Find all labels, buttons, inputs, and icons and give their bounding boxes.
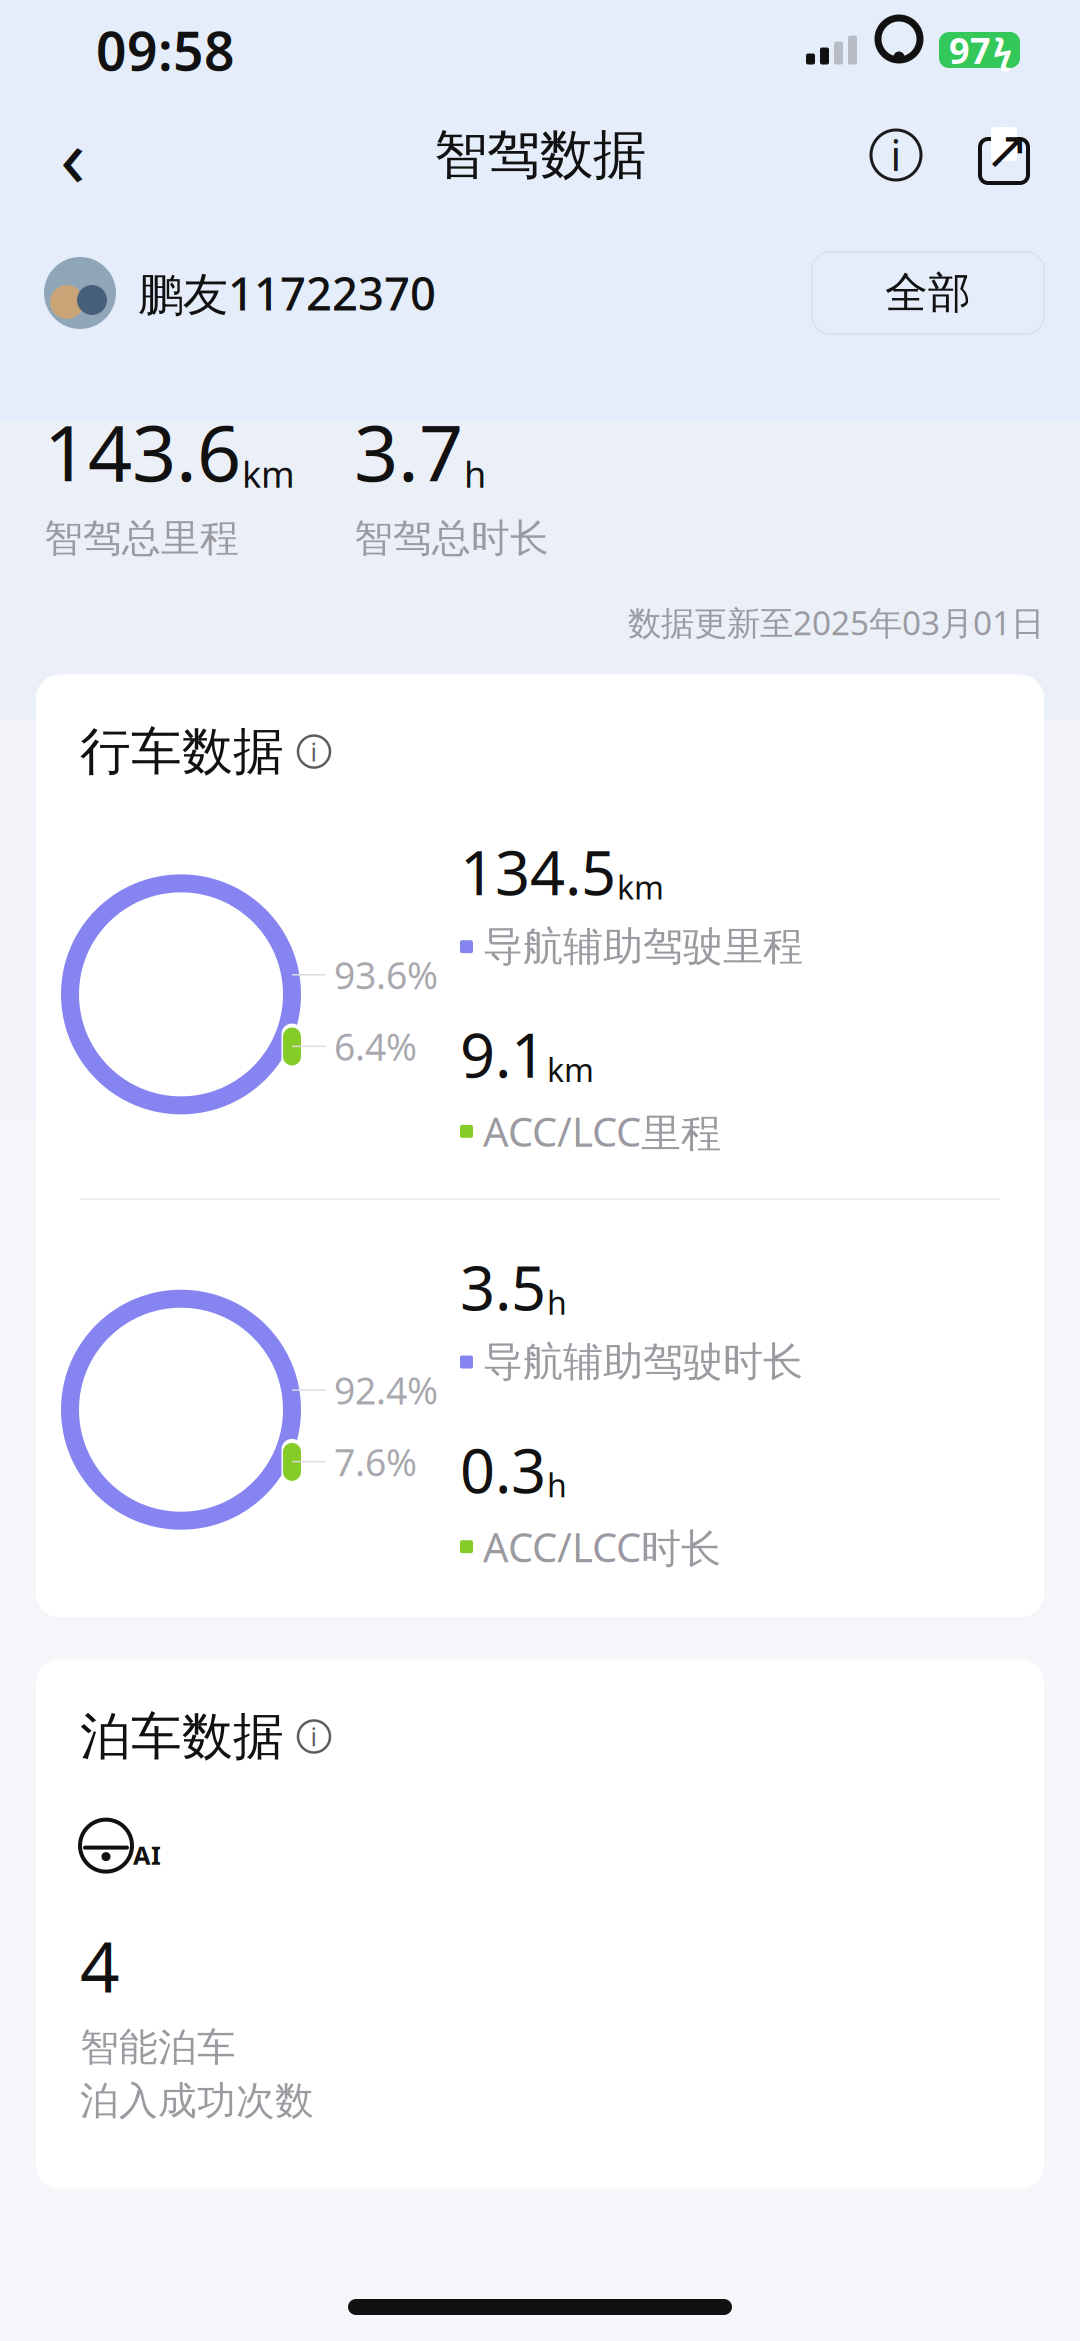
button[interactable]: 行车数据 <box>36 720 330 783</box>
staticText: ϟ <box>993 27 1012 73</box>
staticText: i <box>890 128 901 182</box>
staticText: 4 <box>80 1920 120 2012</box>
staticText: 导航辅助驾驶里程 <box>483 922 803 971</box>
staticText: 9.1 <box>460 1013 546 1095</box>
staticText: 数据更新至2025年03月01日 <box>628 600 1044 644</box>
button[interactable]: Back <box>28 110 118 200</box>
button[interactable]: 泊车数据 <box>36 1705 330 1768</box>
staticText: h <box>547 1464 567 1506</box>
button[interactable]: 全部 <box>812 252 1044 334</box>
staticText: i <box>310 1720 317 1753</box>
staticText: 智能泊车 <box>80 2024 236 2071</box>
staticText: i <box>310 735 317 768</box>
button[interactable]: Info <box>856 115 936 195</box>
staticText: km <box>617 866 664 908</box>
staticText: km <box>547 1048 594 1091</box>
staticText: 鹏友11722370 <box>138 263 436 323</box>
staticText: 行车数据 <box>80 720 284 783</box>
staticText: 134.5 <box>460 831 616 912</box>
staticText: 0.3 <box>460 1429 546 1510</box>
staticText: 97 <box>949 26 991 74</box>
staticText: 92.4% <box>334 1365 438 1415</box>
staticText: 3.5 <box>460 1246 546 1327</box>
staticText: 09:58 <box>96 15 235 85</box>
staticText: 泊入成功次数 <box>80 2077 314 2125</box>
button[interactable]: Share <box>964 115 1044 195</box>
staticText: 导航辅助驾驶时长 <box>483 1337 803 1387</box>
staticText: km <box>242 450 295 498</box>
staticText: h <box>547 1281 567 1324</box>
staticText: 智驾总时长 <box>354 515 549 562</box>
staticText: 泊车数据 <box>80 1705 284 1768</box>
staticText: 143.6 <box>44 400 241 503</box>
staticText: 93.6% <box>334 950 438 1000</box>
staticText: 智驾数据 <box>434 122 646 188</box>
staticText: 智驾总里程 <box>44 515 239 562</box>
staticText: ‹ <box>60 100 86 210</box>
staticText: 6.4% <box>334 1021 417 1071</box>
staticText: 7.6% <box>334 1437 417 1486</box>
staticText: ↗ <box>984 120 1029 180</box>
staticText: ACC/LCC里程 <box>483 1105 721 1158</box>
staticText: 3.7 <box>354 400 463 503</box>
staticText: AI <box>133 1838 161 1872</box>
staticText: h <box>464 450 486 498</box>
staticText: ACC/LCC时长 <box>483 1520 721 1573</box>
staticText: 全部 <box>885 267 971 319</box>
